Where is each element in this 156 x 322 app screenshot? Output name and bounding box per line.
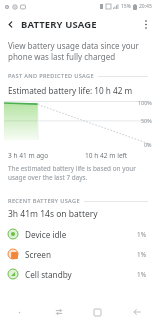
staticText: RECENT BATTERY USAGE xyxy=(8,197,80,205)
staticText: 10 h 42 m left xyxy=(85,151,128,160)
staticText: 15% xyxy=(121,3,131,10)
staticText: 100% xyxy=(138,99,152,106)
staticText: View battery usage data since your phone… xyxy=(8,40,146,62)
staticText: Estimated battery life: 10 h 42 m xyxy=(8,85,133,96)
staticText: 3h 41m 14s on battery xyxy=(8,208,98,220)
staticText: 1% xyxy=(137,230,146,239)
button[interactable]: More options xyxy=(136,14,156,34)
button[interactable]: Home xyxy=(78,302,117,322)
button[interactable]: Back xyxy=(0,14,20,34)
staticText: Cell standby xyxy=(25,269,72,280)
button[interactable]: Screen xyxy=(0,244,156,264)
staticText: 1% xyxy=(137,250,146,259)
staticText: BATTERY USAGE xyxy=(21,18,97,31)
button[interactable]: Back xyxy=(117,302,156,322)
staticText: 3 h 41 m ago xyxy=(8,151,49,160)
staticText: 0% xyxy=(144,141,152,148)
staticText: 20:45 xyxy=(139,3,152,10)
staticText: 50% xyxy=(141,117,152,124)
staticText: Screen xyxy=(25,249,51,260)
button[interactable]: Device idle xyxy=(0,224,156,244)
button[interactable]: Cell standby xyxy=(0,264,156,284)
button[interactable]: Recents xyxy=(39,302,78,322)
staticText: The estimated battery life is based on y… xyxy=(8,164,144,182)
staticText: 1% xyxy=(137,270,146,279)
staticText: Device idle xyxy=(25,229,67,240)
staticText: PAST AND PREDICTED USAGE xyxy=(8,72,94,80)
